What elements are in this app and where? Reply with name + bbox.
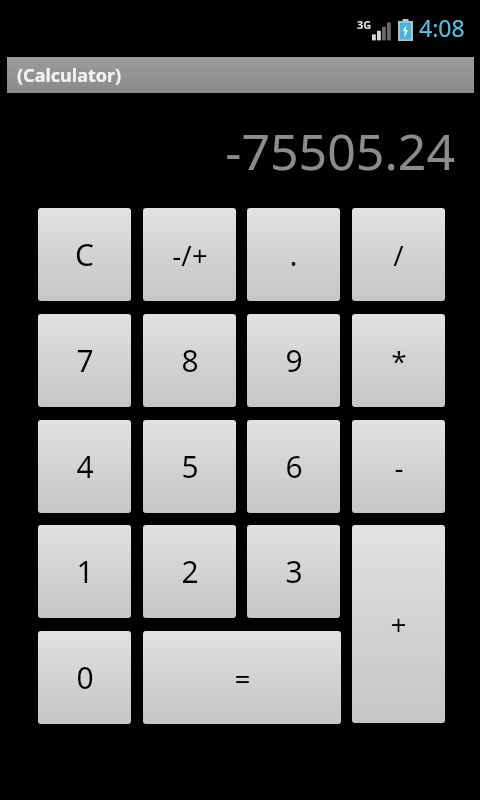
button[interactable]: 6 — [247, 420, 340, 513]
staticText: 9 — [285, 340, 303, 381]
staticText: - — [394, 448, 404, 486]
button[interactable]: . — [247, 208, 340, 301]
staticText: 5 — [181, 446, 199, 487]
staticText: 3G — [357, 17, 372, 32]
other: Signal strength — [372, 22, 392, 42]
staticText: -75505.24 — [225, 117, 455, 185]
button[interactable]: 0 — [38, 631, 131, 724]
staticText: 4:08 — [419, 12, 465, 43]
button[interactable]: 7 — [38, 314, 131, 407]
button[interactable]: 8 — [143, 314, 236, 407]
button[interactable]: (Calculator) — [7, 57, 474, 93]
staticText: 2 — [181, 551, 199, 592]
staticText: 6 — [285, 446, 303, 487]
button[interactable]: - — [352, 420, 445, 513]
button[interactable]: 9 — [247, 314, 340, 407]
other: Battery charging — [398, 19, 413, 41]
staticText: 0 — [76, 657, 94, 698]
staticText: 3 — [285, 551, 303, 592]
button[interactable]: * — [352, 314, 445, 407]
button[interactable]: + — [352, 525, 445, 723]
staticText: 1 — [76, 551, 94, 592]
button[interactable]: 2 — [143, 525, 236, 618]
staticText: C — [75, 234, 94, 275]
button[interactable]: / — [352, 208, 445, 301]
button[interactable]: = — [143, 631, 341, 724]
staticText: + — [390, 605, 407, 643]
staticText: 8 — [181, 340, 199, 381]
button[interactable]: 5 — [143, 420, 236, 513]
staticText: (Calculator) — [17, 63, 122, 88]
button[interactable]: 1 — [38, 525, 131, 618]
staticText: * — [391, 342, 407, 380]
staticText: 4 — [76, 446, 94, 487]
staticText: . — [289, 234, 298, 275]
staticText: 7 — [76, 340, 94, 381]
button[interactable]: 3 — [247, 525, 340, 618]
staticText: -/+ — [172, 236, 208, 274]
staticText: = — [234, 659, 251, 697]
button[interactable]: C — [38, 208, 131, 301]
button[interactable]: -/+ — [143, 208, 236, 301]
button[interactable]: 4 — [38, 420, 131, 513]
staticText: / — [393, 236, 404, 274]
